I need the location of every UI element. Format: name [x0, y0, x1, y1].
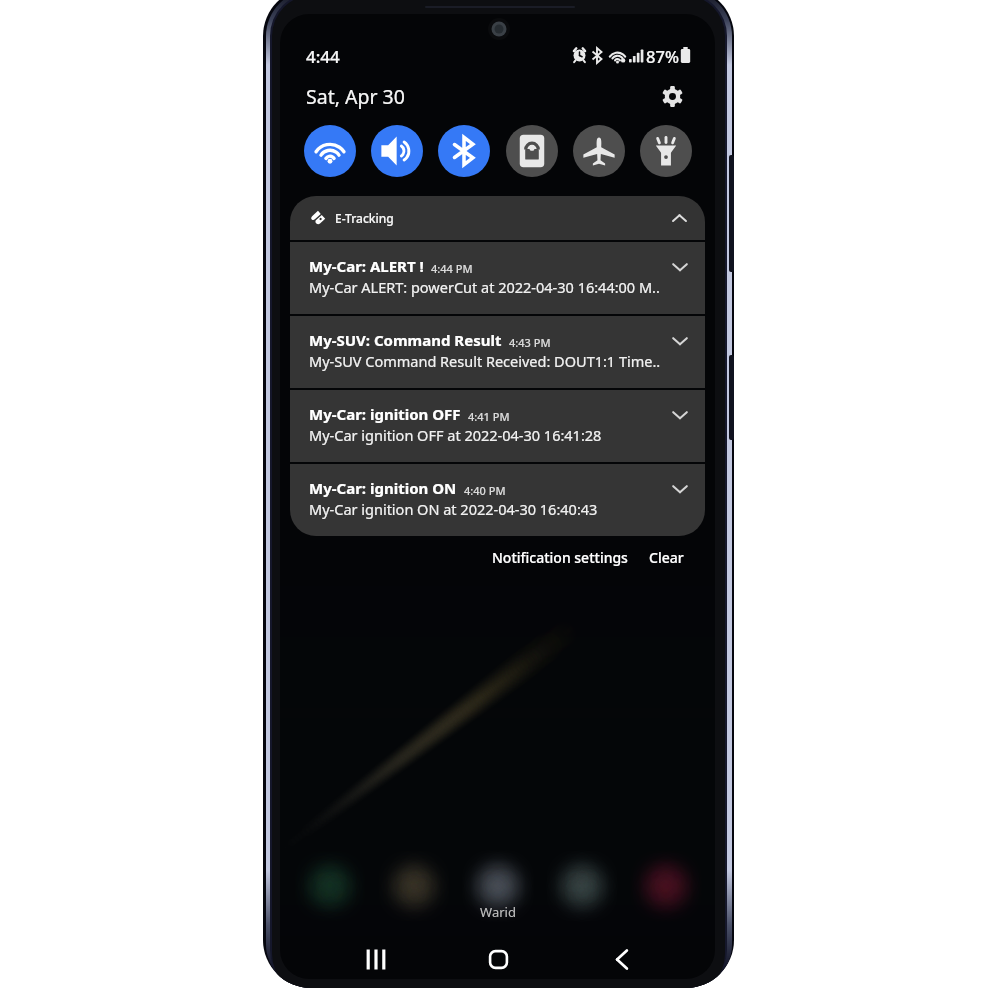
button[interactable]: Airplane mode [573, 125, 625, 177]
staticText: My-Car ignition OFF at 2022-04-30 16:41:… [309, 425, 602, 445]
staticText: 87% [646, 45, 679, 65]
staticText: 4:41 PM [468, 409, 510, 424]
button[interactable]: My-Car: ignition OFF [290, 390, 705, 462]
button[interactable]: Auto rotate lock [506, 125, 558, 177]
button[interactable]: Settings [654, 78, 690, 114]
staticText: Clear [649, 548, 684, 567]
button[interactable]: Sound [371, 125, 423, 177]
staticText: E-Tracking [335, 210, 394, 226]
staticText: My-SUV: Command Result [309, 330, 502, 350]
staticText: My-Car ignition ON at 2022-04-30 16:40:4… [309, 499, 598, 519]
staticText: My-SUV Command Result Received: DOUT1:1 … [309, 351, 661, 371]
button[interactable]: E-Tracking [290, 196, 705, 240]
button[interactable]: Bluetooth [438, 125, 490, 177]
staticText: Notification settings [492, 548, 628, 567]
staticText: Sat, Apr 30 [306, 83, 405, 110]
button[interactable]: Expand [668, 329, 692, 353]
button[interactable]: Clear [643, 543, 690, 572]
button[interactable]: Home [476, 937, 520, 979]
staticText: 4:44 PM [431, 261, 473, 276]
staticText: My-Car: ignition ON [309, 478, 457, 498]
staticText: 4:43 PM [509, 335, 551, 350]
staticText: My-Car ALERT: powerCut at 2022-04-30 16:… [309, 277, 660, 297]
button[interactable]: Expand [668, 255, 692, 279]
button[interactable]: My-Car: ALERT ! [290, 242, 705, 314]
button[interactable]: Wi-Fi [304, 125, 356, 177]
button[interactable]: Recents [354, 937, 398, 979]
staticText: My-Car: ignition OFF [309, 404, 461, 424]
staticText: 4:44 [306, 45, 340, 65]
button[interactable]: Back [599, 937, 643, 979]
staticText: 4:40 PM [464, 483, 506, 498]
button[interactable]: My-Car: ignition ON [290, 464, 705, 536]
button[interactable]: Notification settings [486, 543, 634, 572]
button[interactable]: Expand [668, 477, 692, 501]
staticText: My-Car: ALERT ! [309, 256, 424, 276]
button[interactable]: Flashlight [640, 125, 692, 177]
button[interactable]: My-SUV: Command Result [290, 316, 705, 388]
button[interactable]: Expand [668, 403, 692, 427]
staticText: Warid [480, 903, 516, 921]
